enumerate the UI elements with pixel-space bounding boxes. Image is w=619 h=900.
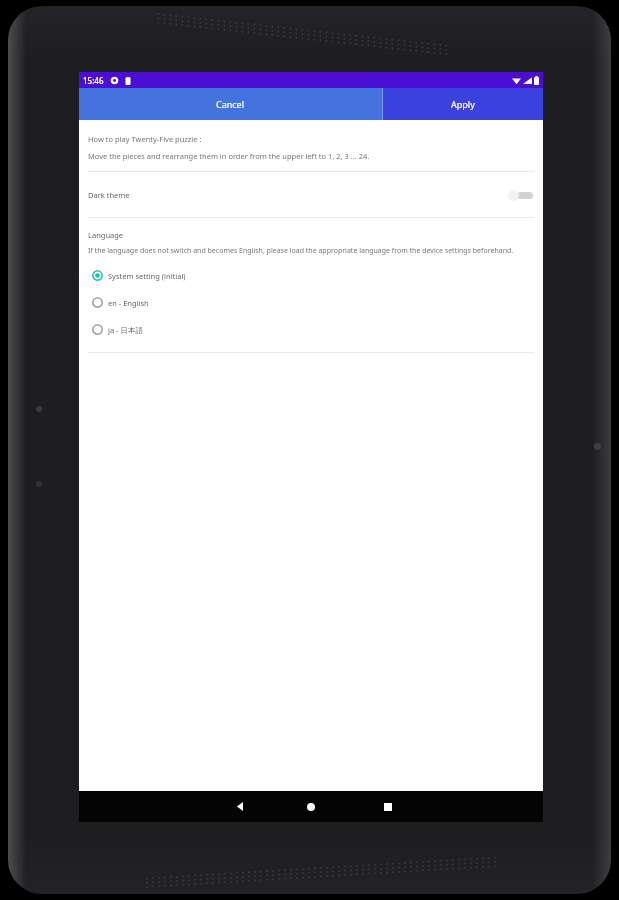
- button[interactable]: en - English: [79, 289, 543, 316]
- button[interactable]: ja - 日本語: [79, 316, 543, 343]
- staticText: en - English: [108, 298, 149, 308]
- staticText: How to play Twenty-Five puzzle :: [88, 134, 202, 144]
- button[interactable]: Cancel: [79, 88, 382, 120]
- staticText: 15:46: [83, 75, 104, 86]
- staticText: Cancel: [216, 98, 245, 110]
- button[interactable]: Recent apps: [372, 791, 404, 822]
- button[interactable]: Apply: [383, 88, 543, 120]
- staticText: If the language does not switch and beco…: [88, 246, 514, 256]
- button[interactable]: Home: [295, 791, 327, 822]
- button[interactable]: Dark theme toggle: [506, 187, 534, 203]
- staticText: Language: [88, 230, 124, 240]
- staticText: Dark theme: [88, 190, 130, 200]
- staticText: System setting (initial): [108, 271, 186, 281]
- button[interactable]: System setting (initial): [79, 262, 543, 289]
- staticText: Apply: [451, 98, 475, 110]
- button[interactable]: Back: [224, 791, 256, 822]
- button[interactable]: Dark theme: [79, 172, 543, 217]
- staticText: ja - 日本語: [108, 325, 143, 335]
- staticText: Move the pieces and rearrange them in or…: [88, 151, 370, 161]
